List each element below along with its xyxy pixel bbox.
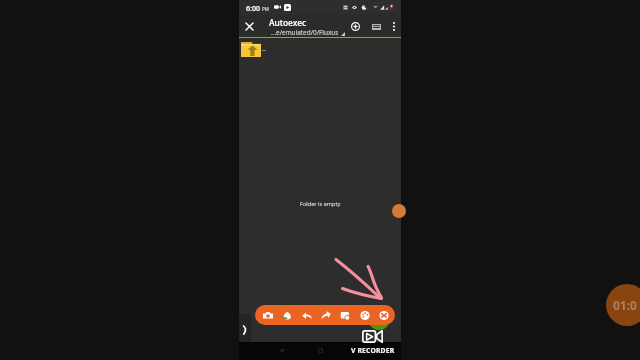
button[interactable]: More options [386, 16, 401, 37]
button[interactable]: Add [346, 16, 365, 37]
staticText: V RECORDER [351, 346, 395, 355]
button[interactable]: Close toolbar [375, 306, 393, 325]
staticText: …e/emulated/0/Fluxus [271, 28, 339, 37]
button[interactable]: Shape [336, 306, 354, 325]
button[interactable]: Add file [392, 204, 406, 218]
button[interactable]: Home [314, 344, 326, 356]
staticText: 6:00 [246, 4, 260, 14]
button[interactable]: Close [240, 16, 259, 37]
button[interactable]: Back [275, 344, 287, 356]
button[interactable]: Undo [298, 306, 316, 325]
button[interactable]: Recording timer [606, 284, 640, 326]
staticText: PM [262, 6, 269, 12]
button[interactable]: View mode [367, 16, 386, 37]
staticText: Folder is empty [300, 200, 341, 208]
button[interactable]: Screenshot [259, 306, 277, 325]
button[interactable]: Color palette [356, 306, 374, 325]
button[interactable]: Redo [317, 306, 335, 325]
staticText: .. [262, 44, 266, 54]
button[interactable]: Paint bucket [278, 306, 296, 325]
button[interactable]: .. [239, 40, 401, 59]
staticText: 01:0 [613, 297, 637, 313]
staticText: Autoexec [269, 17, 307, 28]
button[interactable]: Expand tools [239, 322, 250, 338]
